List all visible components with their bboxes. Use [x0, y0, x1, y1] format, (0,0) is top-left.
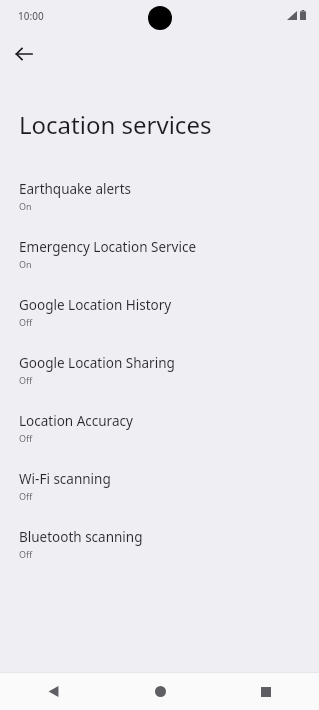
staticText: Off [19, 316, 33, 328]
staticText: Google Location History [19, 296, 172, 314]
staticText: On [19, 200, 32, 212]
staticText: Off [19, 490, 33, 502]
button[interactable]: Earthquake alerts [0, 172, 319, 230]
staticText: Emergency Location Service [19, 238, 197, 256]
button[interactable]: Google Location Sharing [0, 346, 319, 404]
staticText: Wi-Fi scanning [19, 470, 111, 488]
button[interactable]: Google Location History [0, 288, 319, 346]
staticText: Location Accuracy [19, 412, 133, 430]
button[interactable]: Back [6, 36, 42, 72]
staticText: Earthquake alerts [19, 180, 132, 198]
staticText: Off [19, 374, 33, 386]
button[interactable]: Location Accuracy [0, 404, 319, 462]
staticText: 10:00 [18, 9, 44, 23]
staticText: Location services [19, 108, 212, 141]
button[interactable]: Back [0, 673, 107, 710]
button[interactable]: Bluetooth scanning [0, 520, 319, 578]
staticText: Off [19, 432, 33, 444]
staticText: Bluetooth scanning [19, 528, 143, 546]
button[interactable]: Wi-Fi scanning [0, 462, 319, 520]
staticText: Off [19, 548, 33, 560]
button[interactable]: Home [107, 673, 213, 710]
staticText: On [19, 258, 32, 270]
button[interactable]: Recent apps [213, 673, 319, 710]
staticText: Google Location Sharing [19, 354, 175, 372]
button[interactable]: Emergency Location Service [0, 230, 319, 288]
